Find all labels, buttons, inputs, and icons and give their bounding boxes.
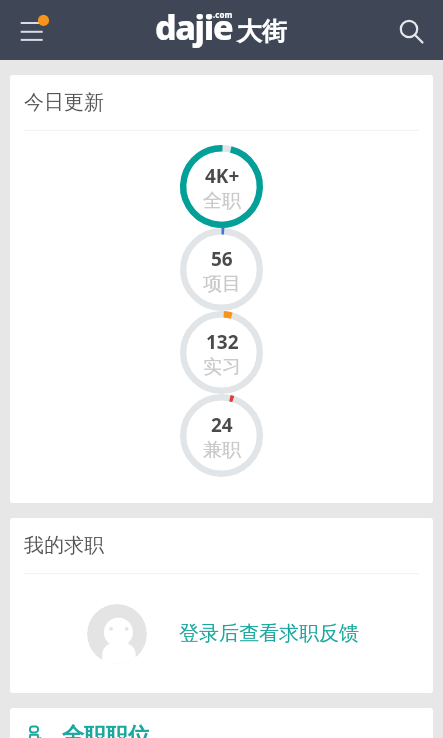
button[interactable]: 56 [180,228,263,311]
staticText: 132 [206,329,239,355]
staticText: 4K+ [205,163,240,189]
button[interactable]: 登录后查看求职反馈 [10,574,433,693]
button[interactable]: Search [381,2,437,58]
staticText: 登录后查看求职反馈 [179,621,359,646]
button[interactable]: 24 [180,394,263,477]
staticText: 24 [211,412,233,438]
staticText: 今日更新 [24,90,104,115]
staticText: 我的求职 [24,533,104,558]
staticText: 大街 [237,16,287,47]
staticText: 项目 [203,272,241,296]
staticText: 全职 [203,189,241,213]
button[interactable]: Menu [6,2,62,58]
button[interactable]: 全职职位 [10,708,433,738]
staticText: .com [213,9,233,20]
button[interactable]: 132 [180,311,263,394]
staticText: dajie [155,4,233,50]
staticText: 56 [211,246,233,272]
button[interactable]: 4K+ [180,145,263,228]
staticText: 兼职 [203,438,241,462]
staticText: 实习 [203,355,241,379]
staticText: 全职职位 [62,722,150,738]
